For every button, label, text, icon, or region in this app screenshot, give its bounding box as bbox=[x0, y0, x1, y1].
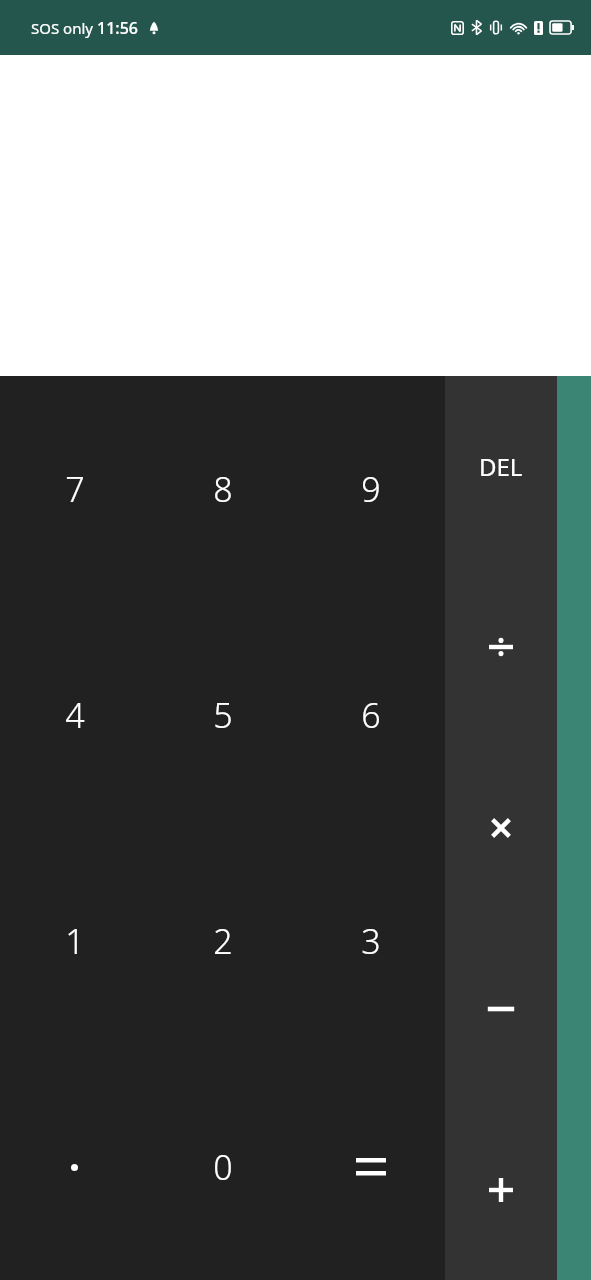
button[interactable]: 2 bbox=[149, 828, 297, 1054]
staticText: 3 bbox=[361, 918, 381, 964]
staticText: 1 bbox=[65, 918, 85, 964]
staticText: 4 bbox=[65, 692, 85, 738]
button[interactable]: Plus bbox=[445, 1099, 557, 1280]
staticText: 6 bbox=[361, 692, 381, 738]
button[interactable]: 3 bbox=[297, 828, 445, 1054]
staticText: 11:56 bbox=[97, 17, 138, 39]
button[interactable] bbox=[297, 1054, 445, 1280]
staticText: 7 bbox=[65, 466, 85, 512]
button[interactable]: 0 bbox=[149, 1054, 297, 1280]
button[interactable]: Divide bbox=[445, 556, 557, 737]
button[interactable]: 9 bbox=[297, 376, 445, 602]
button[interactable] bbox=[0, 1054, 149, 1280]
staticText: 0 bbox=[213, 1144, 233, 1190]
button[interactable]: 7 bbox=[0, 376, 149, 602]
button[interactable]: 6 bbox=[297, 602, 445, 828]
button[interactable]: 1 bbox=[0, 828, 149, 1054]
button[interactable]: DEL bbox=[445, 376, 557, 556]
button[interactable]: 5 bbox=[149, 602, 297, 828]
staticText: 9 bbox=[361, 466, 381, 512]
button[interactable]: 4 bbox=[0, 602, 149, 828]
staticText: 2 bbox=[213, 918, 233, 964]
staticText: 8 bbox=[213, 466, 233, 512]
staticText: DEL bbox=[479, 450, 523, 483]
button[interactable]: Minus bbox=[445, 918, 557, 1099]
button[interactable]: 8 bbox=[149, 376, 297, 602]
button[interactable]: Multiply bbox=[445, 737, 557, 918]
staticText: 5 bbox=[213, 692, 233, 738]
staticText: SOS only bbox=[31, 18, 97, 38]
